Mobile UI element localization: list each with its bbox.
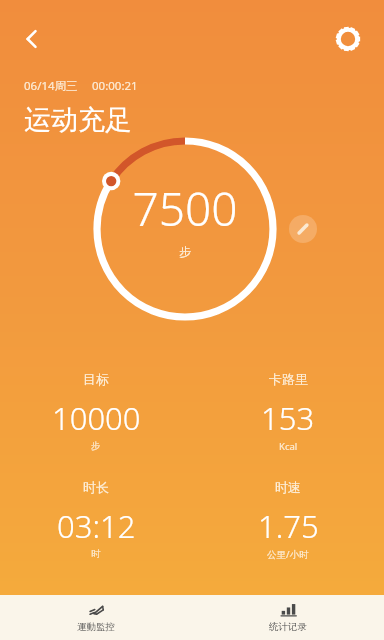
staticText: 10000: [52, 397, 141, 439]
staticText: 时速: [275, 479, 301, 495]
staticText: 时长: [83, 479, 109, 495]
staticText: 7500: [132, 177, 238, 240]
staticText: 00:00:21: [92, 78, 138, 94]
button[interactable]: 统计记录: [192, 595, 384, 640]
staticText: 卡路里: [269, 371, 308, 387]
staticText: 步: [179, 244, 191, 259]
staticText: 06/14周三: [24, 78, 78, 94]
staticText: 步: [91, 440, 101, 452]
button[interactable]: 卡路里: [192, 369, 384, 455]
staticText: 时: [91, 548, 101, 560]
button[interactable]: Settings: [326, 17, 370, 61]
button[interactable]: Edit goal: [289, 215, 317, 243]
staticText: Kcal: [279, 440, 298, 453]
button[interactable]: 運動監控: [0, 595, 192, 640]
staticText: 目标: [83, 371, 109, 387]
staticText: 公里/小时: [267, 548, 309, 561]
button[interactable]: 时速: [192, 477, 384, 563]
button[interactable]: 目标: [0, 369, 192, 454]
staticText: 運動監控: [77, 621, 115, 633]
staticText: 运动充足: [24, 103, 132, 137]
button[interactable]: 时长: [0, 477, 192, 562]
button[interactable]: Back: [10, 17, 54, 61]
staticText: 03:12: [57, 505, 136, 547]
staticText: 1.75: [258, 505, 319, 547]
staticText: 153: [261, 397, 315, 439]
staticText: 统计记录: [269, 621, 307, 633]
